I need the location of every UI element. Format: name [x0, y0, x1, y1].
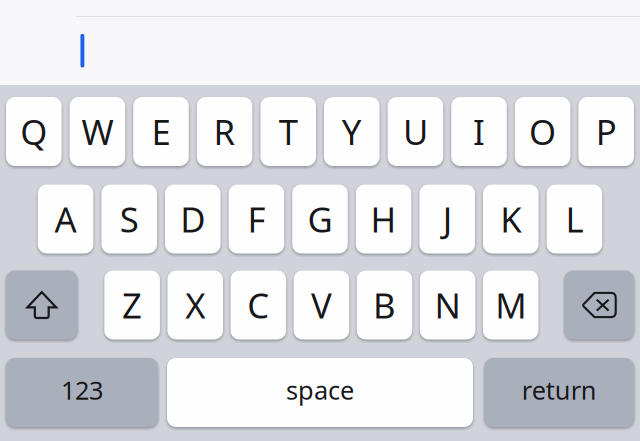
staticText: R: [214, 108, 236, 154]
button[interactable]: A: [38, 184, 93, 253]
staticText: Y: [342, 108, 362, 154]
staticText: G: [307, 196, 332, 242]
staticText: O: [529, 108, 556, 154]
button[interactable]: return: [484, 358, 634, 427]
staticText: C: [247, 282, 269, 328]
staticText: 123: [61, 373, 103, 407]
button[interactable]: L: [547, 184, 602, 253]
button[interactable]: K: [483, 184, 539, 253]
button[interactable]: B: [357, 270, 412, 339]
staticText: S: [120, 196, 139, 242]
button[interactable]: I: [451, 97, 507, 166]
button[interactable]: S: [101, 184, 157, 253]
button[interactable]: U: [388, 97, 443, 166]
staticText: return: [522, 373, 597, 407]
button[interactable]: X: [167, 270, 223, 339]
staticText: Z: [122, 282, 142, 328]
staticText: J: [443, 196, 452, 242]
button[interactable]: C: [230, 270, 286, 339]
button[interactable]: M: [483, 270, 538, 339]
button[interactable]: P: [578, 97, 634, 166]
button[interactable]: H: [356, 184, 411, 253]
staticText: N: [435, 282, 461, 328]
staticText: H: [371, 196, 397, 242]
staticText: B: [373, 282, 396, 328]
button[interactable]: N: [420, 270, 475, 339]
staticText: F: [247, 196, 265, 242]
button[interactable]: Y: [324, 97, 380, 166]
button[interactable]: J: [419, 184, 475, 253]
staticText: space: [286, 373, 354, 407]
button[interactable]: O: [515, 97, 570, 166]
staticText: A: [55, 196, 77, 242]
button[interactable]: V: [294, 270, 349, 339]
button[interactable]: 123: [6, 358, 158, 427]
button[interactable]: R: [197, 97, 252, 166]
button[interactable]: space: [167, 358, 473, 427]
staticText: X: [185, 282, 205, 328]
button[interactable]: W: [70, 97, 125, 166]
staticText: W: [81, 108, 113, 154]
button[interactable]: F: [229, 184, 284, 253]
staticText: U: [403, 108, 428, 154]
staticText: D: [180, 196, 205, 242]
button[interactable]: Z: [104, 270, 160, 339]
staticText: T: [279, 108, 298, 154]
staticText: Q: [20, 108, 47, 154]
button[interactable]: G: [292, 184, 348, 253]
button[interactable]: D: [165, 184, 221, 253]
button[interactable]: Shift: [6, 270, 77, 339]
staticText: P: [596, 108, 617, 154]
button[interactable]: T: [260, 97, 316, 166]
staticText: K: [500, 196, 521, 242]
staticText: I: [473, 108, 485, 154]
button[interactable]: Delete: [564, 270, 634, 339]
staticText: M: [495, 282, 526, 328]
staticText: L: [565, 196, 583, 242]
staticText: V: [311, 282, 332, 328]
staticText: E: [151, 108, 170, 154]
button[interactable]: Q: [6, 97, 62, 166]
button[interactable]: E: [133, 97, 189, 166]
